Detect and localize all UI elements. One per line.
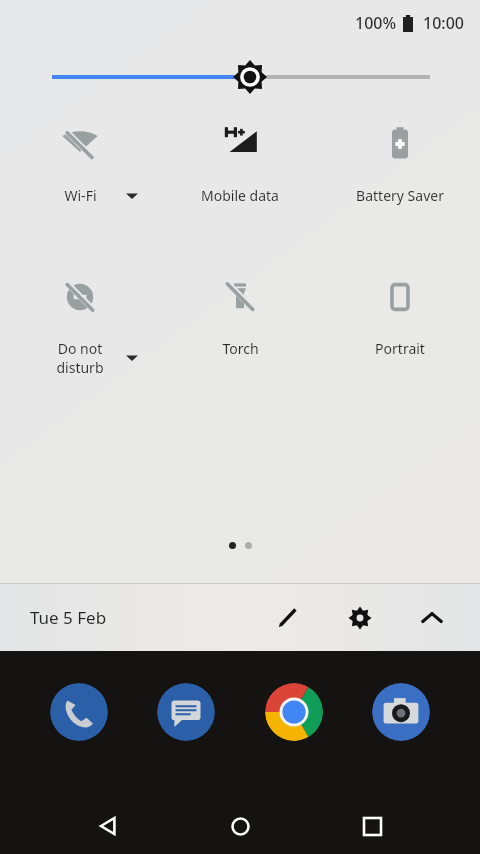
button[interactable]: Back xyxy=(84,802,132,850)
button[interactable]: Do not disturb xyxy=(0,271,160,377)
button[interactable]: Recents xyxy=(348,802,396,850)
button[interactable]: Camera xyxy=(372,683,430,741)
staticText: Portrait xyxy=(375,339,425,358)
button[interactable]: Chrome xyxy=(265,683,323,741)
staticText: Wi-Fi xyxy=(64,186,97,205)
staticText: 10:00 xyxy=(423,12,464,34)
button[interactable]: Edit xyxy=(264,594,312,642)
button[interactable]: Collapse xyxy=(408,594,456,642)
button[interactable]: Settings xyxy=(336,594,384,642)
button[interactable]: Brightness xyxy=(0,60,480,94)
button[interactable]: Messages xyxy=(157,683,215,741)
staticText: Mobile data xyxy=(201,186,279,205)
button[interactable]: Portrait xyxy=(320,271,480,358)
button[interactable]: Home xyxy=(216,802,264,850)
button[interactable]: Wi-Fi xyxy=(0,118,160,205)
staticText: Battery Saver xyxy=(356,186,444,205)
staticText: Do not disturb xyxy=(56,339,104,377)
staticText: Torch xyxy=(222,339,259,358)
button[interactable]: Phone xyxy=(50,683,108,741)
button[interactable]: Mobile data xyxy=(160,118,320,205)
staticText: 100% xyxy=(355,12,397,34)
button[interactable]: Torch xyxy=(160,271,320,358)
button[interactable]: Tue 5 Feb xyxy=(30,606,107,629)
button[interactable]: Battery Saver xyxy=(320,118,480,205)
